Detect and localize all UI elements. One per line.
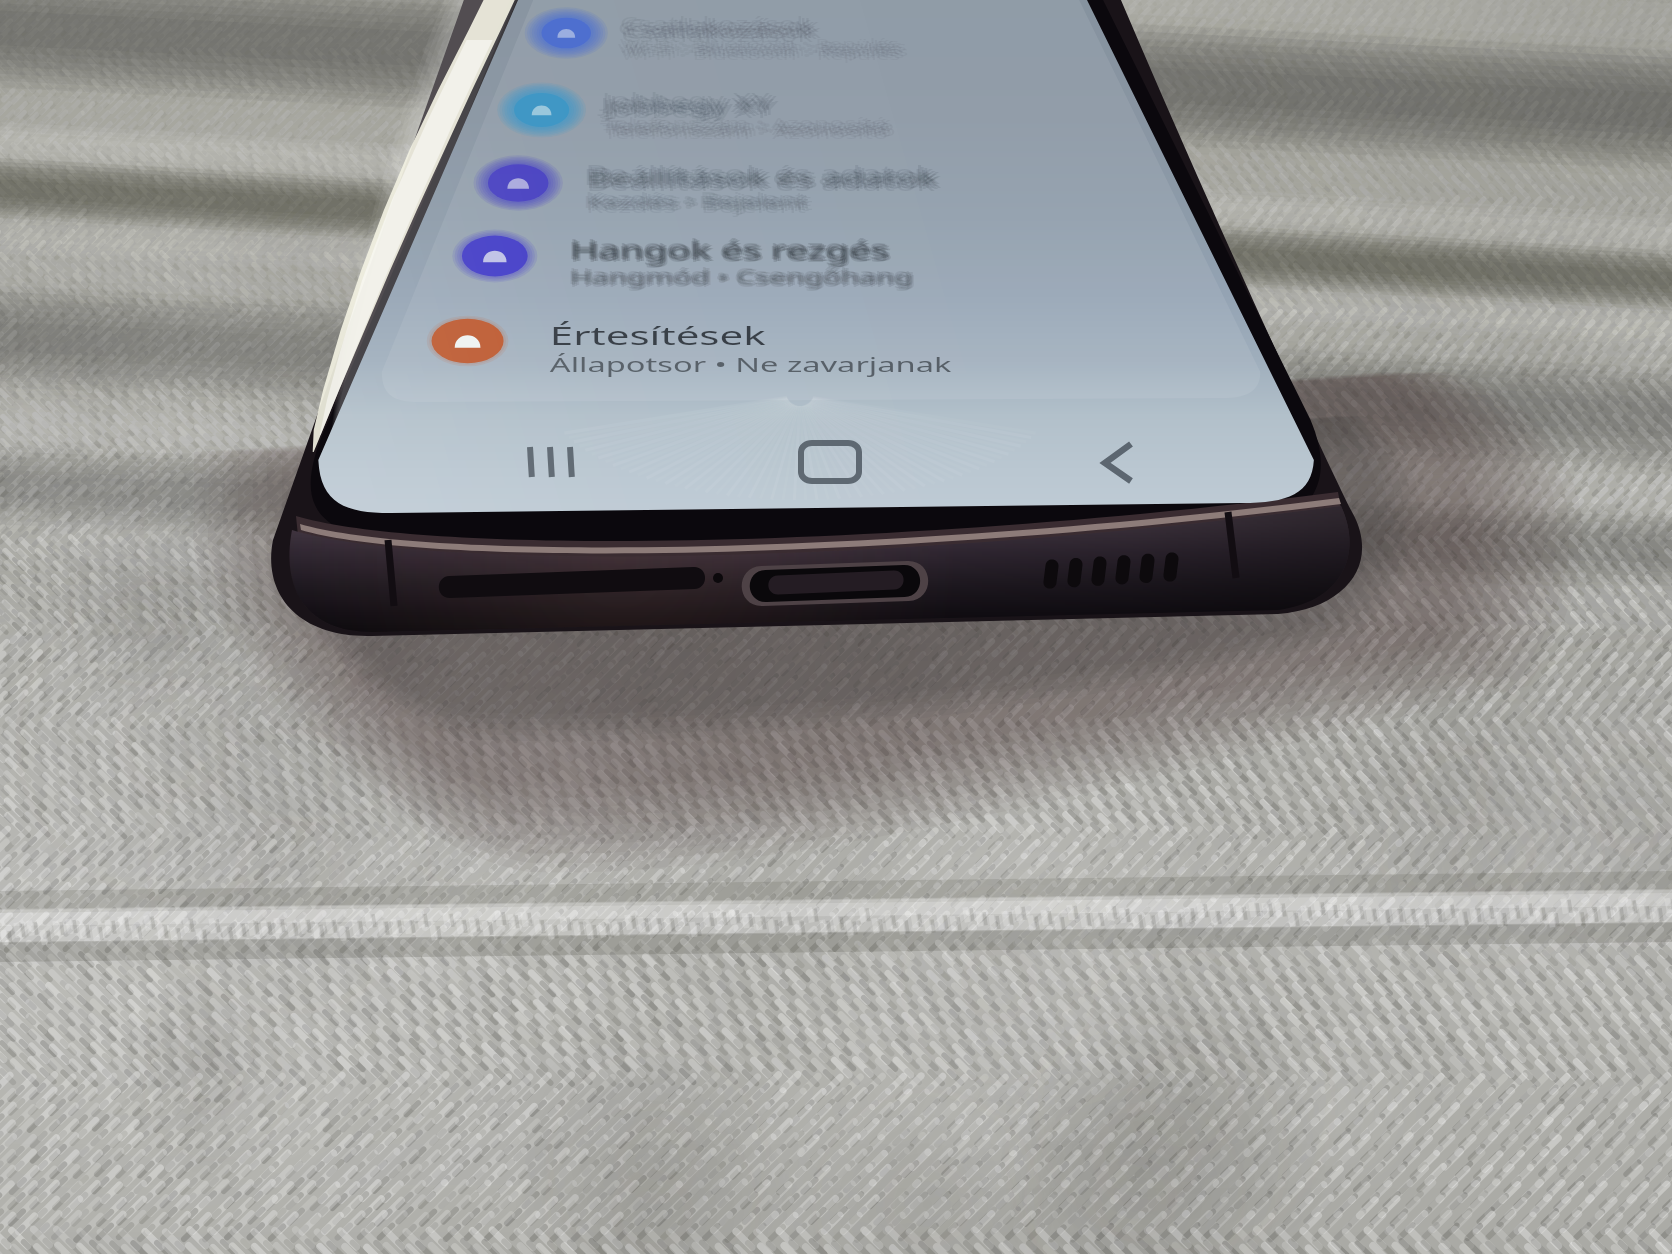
button[interactable]: Phone lying on fabric showing the Settin… [0, 0, 1672, 1254]
